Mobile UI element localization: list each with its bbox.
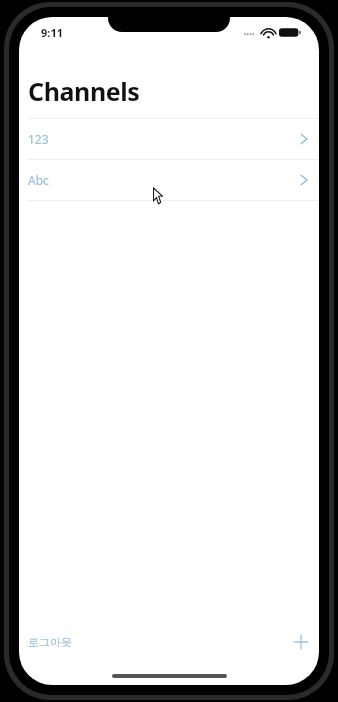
staticText: Channels	[28, 74, 140, 108]
button[interactable]: 로그아웃	[19, 631, 80, 653]
staticText: 로그아웃	[28, 635, 72, 649]
button[interactable]: Abc	[19, 160, 319, 200]
staticText: 123	[28, 131, 49, 147]
button[interactable]: 123	[19, 119, 319, 159]
button[interactable]: Add channel	[285, 630, 319, 654]
staticText: Abc	[28, 172, 49, 188]
staticText: 9:11	[41, 25, 63, 40]
